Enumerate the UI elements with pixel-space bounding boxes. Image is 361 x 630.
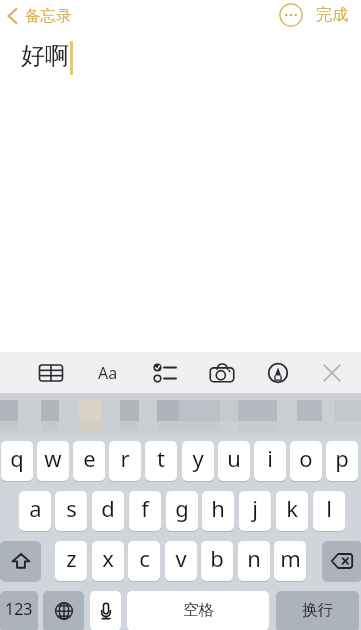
staticText: 空格 (183, 600, 214, 620)
button[interactable]: o (290, 441, 322, 481)
staticText: q (10, 443, 24, 473)
staticText: g (175, 493, 189, 523)
button[interactable]: t (145, 441, 177, 481)
button[interactable]: Close keyboard (312, 352, 352, 393)
button[interactable]: j (239, 491, 271, 531)
button[interactable]: u (218, 441, 250, 481)
button[interactable]: d (92, 491, 124, 531)
staticText: d (101, 493, 115, 523)
button[interactable]: Checklist (145, 352, 185, 393)
staticText: u (227, 443, 241, 473)
staticText: b (210, 543, 224, 573)
staticText: h (211, 493, 225, 523)
staticText: 完成 (316, 5, 348, 25)
button[interactable]: c (128, 541, 160, 581)
staticText: w (44, 443, 62, 473)
staticText: v (175, 543, 187, 573)
button[interactable]: 空格 (127, 591, 269, 630)
staticText: c (139, 543, 150, 573)
staticText: a (29, 493, 42, 523)
staticText: i (267, 443, 273, 473)
staticText: o (299, 443, 313, 473)
button[interactable]: a (19, 491, 51, 531)
button[interactable]: p (326, 441, 358, 481)
button[interactable]: e (73, 441, 105, 481)
staticText: j (252, 493, 258, 523)
staticText: Aa (98, 362, 118, 384)
button[interactable]: v (165, 541, 197, 581)
button[interactable]: 备忘录 (2, 3, 76, 29)
staticText: 好啊 (21, 41, 69, 71)
button[interactable]: 完成 (308, 2, 356, 28)
staticText: z (66, 543, 77, 573)
button[interactable]: More options (279, 3, 303, 27)
button[interactable]: Backspace (322, 541, 361, 581)
button[interactable]: z (55, 541, 87, 581)
staticText: 换行 (302, 600, 333, 620)
button[interactable]: m (274, 541, 306, 581)
button[interactable]: y (182, 441, 214, 481)
staticText: m (280, 543, 301, 573)
button[interactable]: l (313, 491, 345, 531)
button[interactable]: Camera (202, 352, 242, 393)
button[interactable]: k (276, 491, 308, 531)
staticText: 备忘录 (25, 6, 72, 26)
button[interactable]: Insert table (31, 352, 71, 393)
staticText: l (326, 493, 332, 523)
staticText: t (157, 443, 165, 473)
button[interactable]: h (202, 491, 234, 531)
button[interactable]: q (1, 441, 33, 481)
button[interactable]: Aa (88, 352, 128, 393)
button[interactable]: x (92, 541, 124, 581)
staticText: r (120, 443, 130, 473)
staticText: 123 (5, 598, 33, 620)
staticText: x (102, 543, 114, 573)
staticText: n (247, 543, 261, 573)
button[interactable]: n (238, 541, 270, 581)
staticText: k (286, 493, 298, 523)
button[interactable]: 换行 (276, 591, 359, 630)
button[interactable]: g (166, 491, 198, 531)
button[interactable]: s (55, 491, 87, 531)
staticText: p (335, 443, 349, 473)
button[interactable]: b (201, 541, 233, 581)
button[interactable]: Switch keyboard (43, 591, 84, 630)
button[interactable]: w (37, 441, 69, 481)
staticText: e (83, 443, 96, 473)
button[interactable]: Dictation (90, 591, 121, 630)
button[interactable]: Markup (258, 352, 298, 393)
staticText: f (141, 493, 149, 523)
staticText: s (66, 493, 77, 523)
button[interactable]: Shift (0, 541, 41, 581)
button[interactable]: 123 (0, 591, 38, 630)
button[interactable]: i (254, 441, 286, 481)
staticText: y (192, 443, 204, 473)
button[interactable]: r (109, 441, 141, 481)
button[interactable]: f (129, 491, 161, 531)
